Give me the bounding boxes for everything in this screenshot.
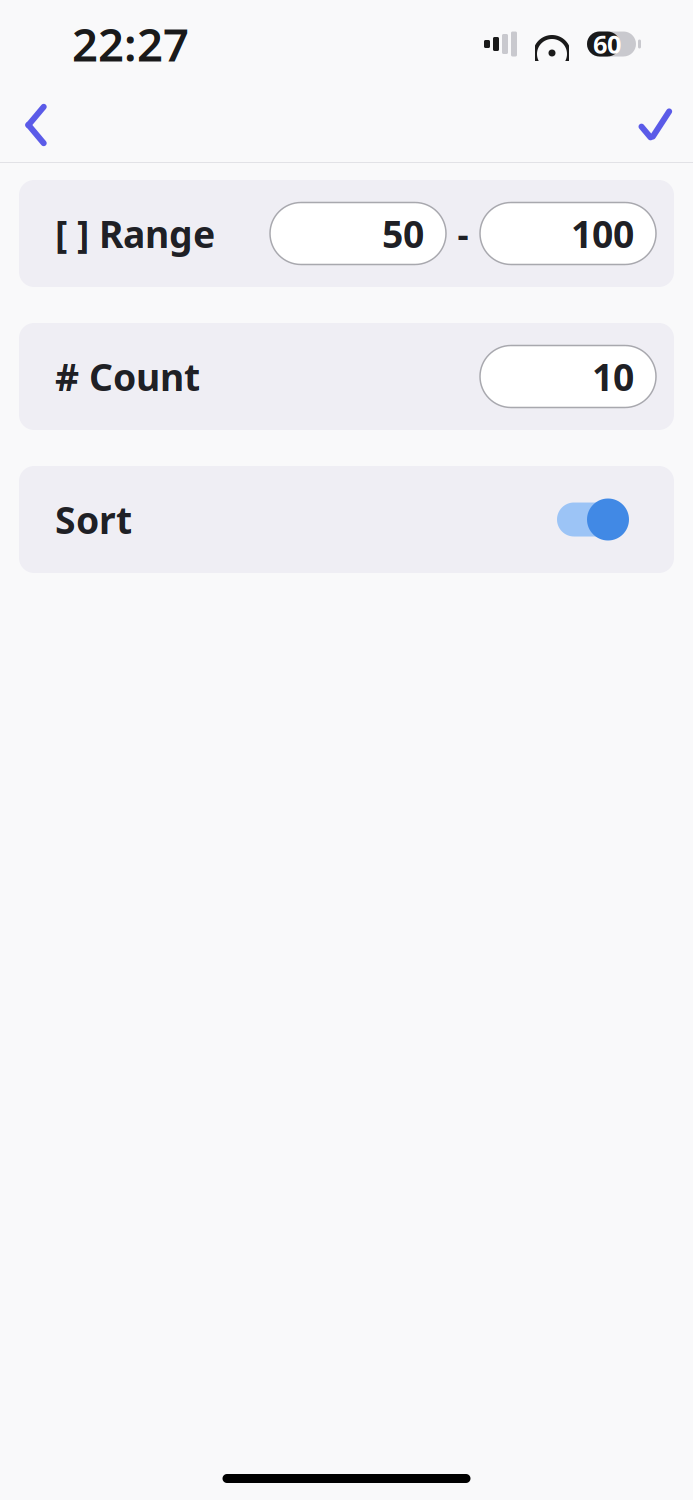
staticText: [ ] Range — [55, 209, 215, 258]
staticText: 10 — [592, 352, 634, 401]
staticText: # Count — [55, 352, 200, 401]
button[interactable]: 10 — [480, 345, 656, 407]
staticText: 50 — [382, 209, 424, 258]
button[interactable]: 100 — [480, 202, 656, 264]
button[interactable]: Back — [8, 97, 64, 153]
staticText: 100 — [571, 209, 634, 258]
staticText: 60 — [593, 27, 621, 61]
button[interactable]: 50 — [270, 202, 446, 264]
staticText: 22:27 — [72, 14, 189, 74]
button[interactable]: Confirm — [629, 97, 685, 153]
staticText: - — [457, 210, 468, 256]
button[interactable]: Sort — [0, 466, 693, 573]
staticText: Sort — [55, 495, 132, 544]
